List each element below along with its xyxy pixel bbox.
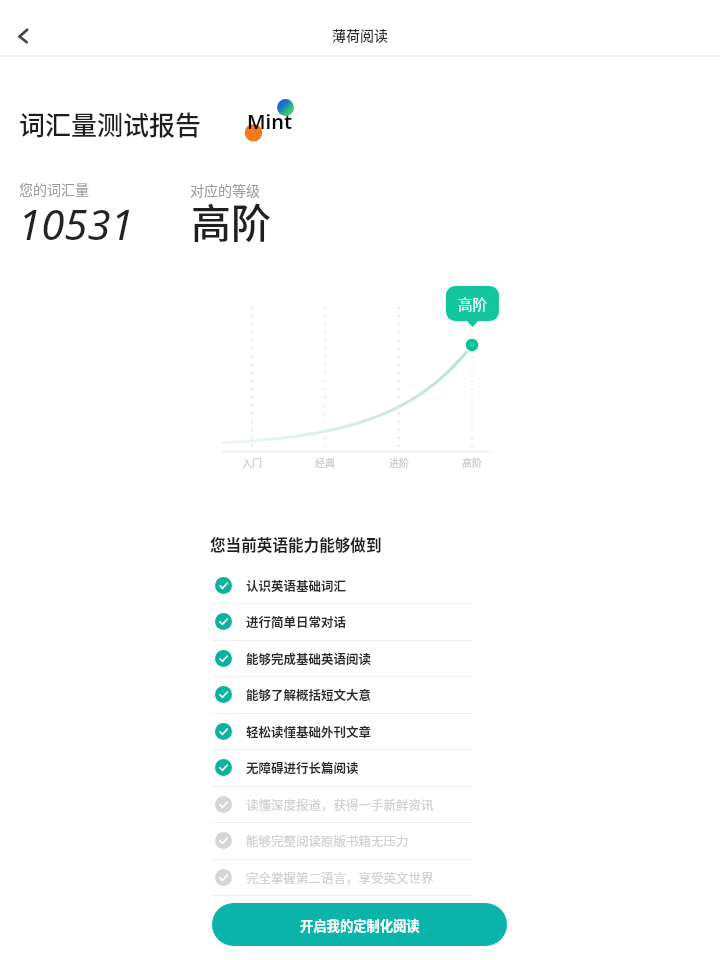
button[interactable]: 读懂深度报道，获得一手新鲜资讯 — [215, 786, 473, 823]
staticText: 词汇量测试报告 — [19, 105, 202, 143]
staticText: 开启我的定制化阅读 — [300, 916, 420, 935]
staticText: 进行简单日常对话 — [246, 612, 347, 630]
button[interactable]: 认识英语基础词汇 — [215, 567, 473, 604]
staticText: 您的词汇量 — [19, 179, 89, 199]
staticText: 完全掌握第二语言，享受英文世界 — [246, 868, 434, 886]
staticText: 能够完整阅读原版书籍无压力 — [246, 831, 409, 849]
button[interactable]: 轻松读懂基础外刊文章 — [215, 713, 473, 750]
staticText: 无障碍进行长篇阅读 — [246, 758, 359, 776]
button[interactable]: 能够了解概括短文大意 — [215, 676, 473, 713]
staticText: 薄荷阅读 — [332, 25, 388, 45]
button[interactable]: 能够完成基础英语阅读 — [215, 640, 473, 677]
staticText: 入门 — [242, 455, 262, 469]
staticText: 读懂深度报道，获得一手新鲜资讯 — [246, 795, 434, 813]
staticText: 认识英语基础词汇 — [246, 576, 347, 594]
staticText: 10531 — [18, 195, 134, 252]
staticText: 能够了解概括短文大意 — [246, 685, 372, 703]
button[interactable]: 能够完整阅读原版书籍无压力 — [215, 822, 473, 859]
staticText: 轻松读懂基础外刊文章 — [246, 722, 372, 740]
staticText: 您当前英语能力能够做到 — [210, 533, 382, 556]
button[interactable]: 开启我的定制化阅读 — [212, 903, 507, 946]
staticText: 高阶 — [191, 192, 271, 250]
button[interactable]: 完全掌握第二语言，享受英文世界 — [215, 859, 473, 896]
staticText: 经典 — [315, 455, 335, 469]
button[interactable]: Back — [3, 16, 43, 56]
staticText: 对应的等级 — [190, 180, 260, 200]
staticText: 高阶 — [458, 293, 487, 314]
button[interactable]: 无障碍进行长篇阅读 — [215, 749, 473, 786]
staticText: Mint — [247, 108, 293, 135]
button[interactable]: 进行简单日常对话 — [215, 603, 473, 640]
staticText: 能够完成基础英语阅读 — [246, 649, 372, 667]
staticText: 高阶 — [462, 455, 482, 469]
staticText: 进阶 — [389, 455, 409, 469]
